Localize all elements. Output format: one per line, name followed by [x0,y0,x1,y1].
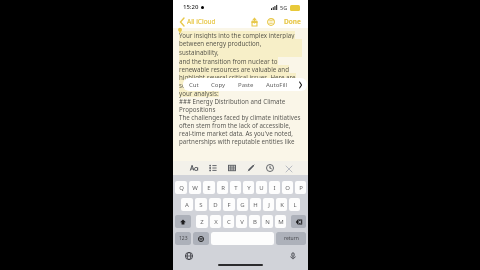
button[interactable]: C [223,215,234,228]
button[interactable]: N [262,215,273,228]
button[interactable]: Table [227,163,237,173]
staticText: Paste [238,81,254,89]
staticText: Copy [211,81,226,89]
staticText: Y [247,184,251,192]
button[interactable]: Done [282,15,303,28]
button[interactable]: All iCloud [178,15,218,28]
button[interactable]: L [289,198,300,211]
staticText: P [299,184,303,192]
staticText: some key points to consider regarding [179,81,291,89]
button[interactable]: U [256,181,267,194]
staticText: E [207,184,211,192]
button[interactable]: Cut [183,78,205,91]
staticText: F [227,201,231,209]
button[interactable]: More [265,16,277,28]
staticText: C [227,218,231,226]
staticText: A [185,201,189,209]
button[interactable]: Shift [175,215,191,228]
button[interactable]: A [181,198,193,211]
button[interactable]: Checklist [208,163,218,173]
button[interactable]: H [250,198,261,211]
button[interactable]: AutoFill [260,78,294,91]
button[interactable]: J [263,198,274,211]
staticText: I [273,184,276,192]
staticText: L [293,201,297,209]
staticText: Your insights into the complex interplay [179,31,295,39]
staticText: H [253,201,258,209]
staticText: All iCloud [187,17,216,26]
staticText: 5G [280,4,288,11]
staticText: G [240,201,245,209]
staticText: U [259,184,264,192]
button[interactable]: Paste [232,78,260,91]
button[interactable]: G [237,198,248,211]
staticText: The challenges faced by climate initiati… [179,113,301,121]
staticText: ### Energy Distribution and Climate [179,97,286,105]
button[interactable]: return [276,232,306,245]
staticText: highlight several critical issues. Here … [179,73,296,81]
button[interactable]: D [209,198,221,211]
button[interactable]: Z [196,215,208,228]
staticText: N [265,218,270,226]
button[interactable]: Dictation [287,250,298,261]
staticText: renewable resources are valuable and [179,65,289,73]
staticText: K [280,201,284,209]
staticText: D [213,201,218,209]
button[interactable]: O [282,181,293,194]
staticText: Cut [189,81,199,89]
staticText: V [240,218,244,226]
staticText: often stem from the lack of accessible, [179,121,291,129]
staticText: real-time market data. As you've noted, [179,129,294,137]
staticText: between energy production, sustainabilit… [179,39,302,57]
button[interactable]: E [203,181,215,194]
button[interactable]: V [236,215,247,228]
button[interactable]: X [210,215,221,228]
staticText: your analysis: [179,89,219,97]
staticText: T [234,184,238,192]
button[interactable]: Q [175,181,187,194]
button[interactable]: More actions [294,78,307,91]
staticText: return [284,235,299,242]
staticText: and the transition from nuclear to [179,57,278,65]
button[interactable]: Y [243,181,254,194]
staticText: X [214,218,218,226]
button[interactable]: R [217,181,228,194]
button[interactable]: B [249,215,260,228]
staticText: O [285,184,290,192]
button[interactable]: Backspace [291,215,306,228]
button[interactable]: Attach [246,163,256,173]
button[interactable]: Text format [189,163,199,173]
button[interactable]: Close [284,164,293,173]
button[interactable]: T [230,181,241,194]
button[interactable]: Copy [205,78,232,91]
button[interactable]: P [295,181,306,194]
button[interactable]: Emoji [193,232,209,245]
button[interactable]: W [189,181,201,194]
button[interactable]: I [269,181,280,194]
staticText: partnerships with reputable entities lik… [179,137,295,145]
staticText: R [221,184,225,192]
staticText: 123 [179,235,188,242]
button[interactable]: K [276,198,287,211]
staticText: Done [284,17,301,26]
staticText: 15:20 [183,3,199,11]
staticText: B [253,218,257,226]
button[interactable]: 123 [175,232,191,245]
button[interactable]: Camera [265,163,275,173]
staticText: J [268,201,270,209]
staticText: Z [200,218,204,226]
staticText: Propositions [179,105,216,113]
button[interactable]: F [223,198,235,211]
staticText: Q [179,184,184,192]
staticText: M [278,218,284,226]
button[interactable]: S [195,198,207,211]
staticText: S [199,201,203,209]
button[interactable]: Share [249,16,260,28]
button[interactable]: Change keyboard [183,250,194,261]
staticText: AutoFill [266,81,288,89]
button[interactable]: M [275,215,286,228]
staticText: W [192,184,198,192]
